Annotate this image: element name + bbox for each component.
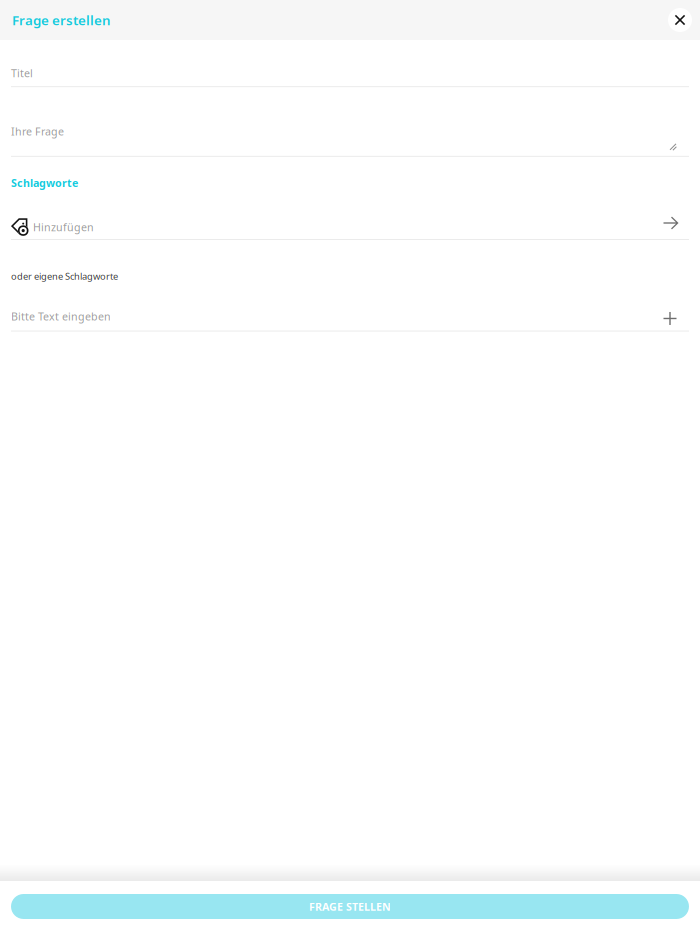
staticText: Schlagworte xyxy=(11,176,78,190)
button[interactable]: FRAGE STELLEN xyxy=(11,894,689,919)
button[interactable]: Close xyxy=(668,8,692,32)
staticText: Ihre Frage xyxy=(11,124,64,138)
staticText: Bitte Text eingeben xyxy=(11,309,111,324)
staticText: Titel xyxy=(11,66,33,80)
button[interactable]: Titel xyxy=(11,40,689,87)
staticText: Frage erstellen xyxy=(12,11,111,29)
staticText: oder eigene Schlagworte xyxy=(11,270,118,282)
staticText: Hinzufügen xyxy=(33,220,94,234)
button[interactable]: Ihre Frage xyxy=(11,87,689,157)
staticText: FRAGE STELLEN xyxy=(309,899,391,914)
button[interactable]: Bitte Text eingeben xyxy=(11,282,689,332)
button[interactable]: Hinzufügen xyxy=(11,190,689,240)
